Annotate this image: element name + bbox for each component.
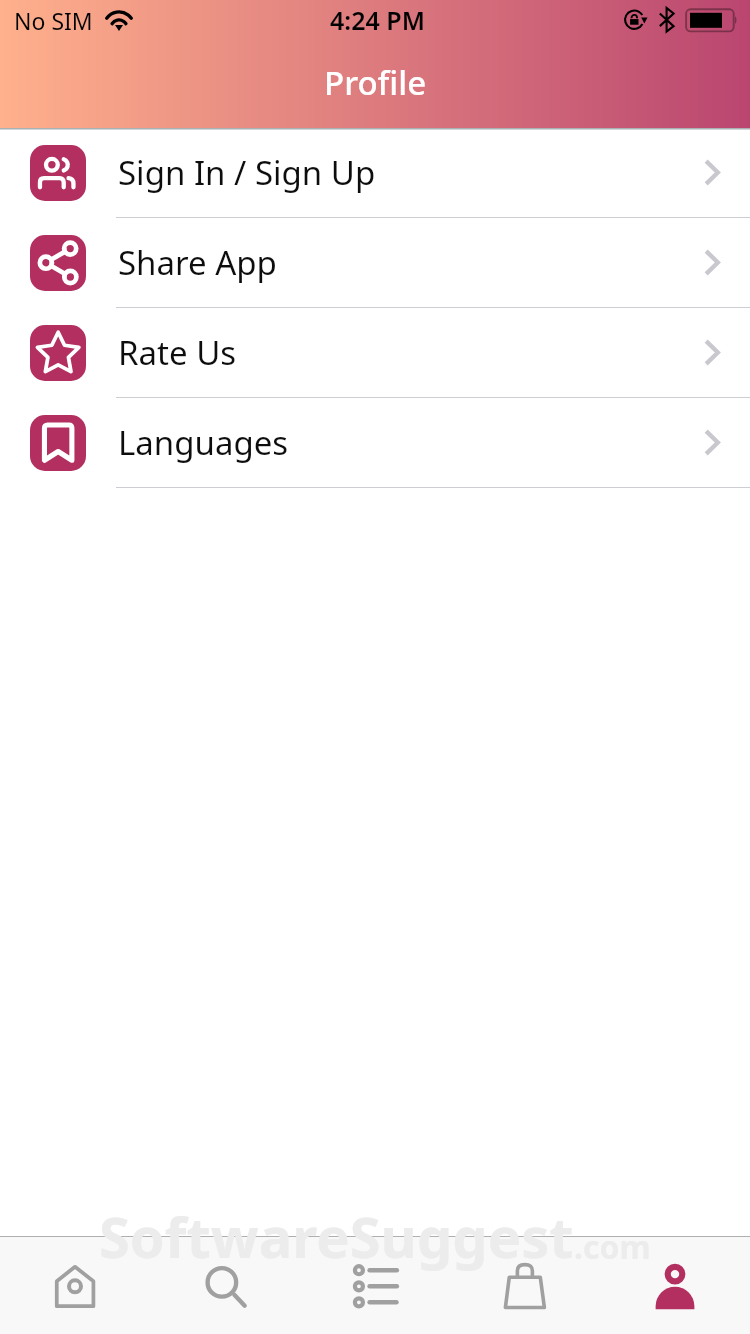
- button[interactable]: Share App: [0, 218, 750, 307]
- button[interactable]: Home: [0, 1237, 150, 1334]
- button[interactable]: Languages: [0, 398, 750, 487]
- button[interactable]: Categories: [300, 1237, 450, 1334]
- button[interactable]: Profile: [600, 1237, 750, 1334]
- staticText: Languages: [118, 420, 289, 465]
- staticText: No SIM: [14, 5, 93, 36]
- staticText: Sign In / Sign Up: [118, 150, 376, 195]
- button[interactable]: Rate Us: [0, 308, 750, 397]
- staticText: 4:24 PM: [330, 3, 425, 37]
- button[interactable]: Sign In / Sign Up: [0, 128, 750, 217]
- button[interactable]: Cart: [450, 1237, 600, 1334]
- button[interactable]: Search: [150, 1237, 300, 1334]
- staticText: SoftwareSuggest: [99, 1198, 574, 1274]
- staticText: .com: [574, 1225, 651, 1269]
- staticText: Share App: [118, 240, 277, 285]
- staticText: Profile: [324, 60, 427, 105]
- staticText: Rate Us: [118, 330, 237, 375]
